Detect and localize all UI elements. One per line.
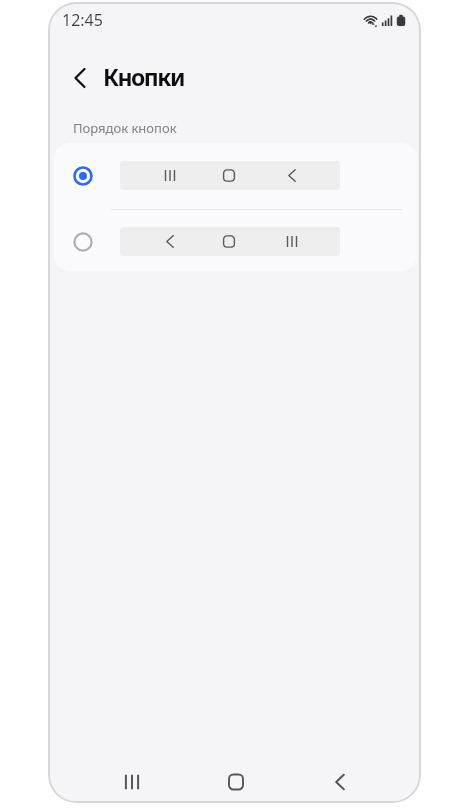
staticText: Кнопки <box>103 61 184 92</box>
button[interactable] <box>54 210 417 271</box>
button[interactable] <box>62 60 98 96</box>
button[interactable] <box>316 758 364 803</box>
staticText: Порядок кнопок <box>73 119 177 137</box>
staticText: 12:45 <box>62 9 103 31</box>
button[interactable] <box>108 758 156 803</box>
button[interactable] <box>54 143 417 209</box>
button[interactable] <box>212 758 260 803</box>
